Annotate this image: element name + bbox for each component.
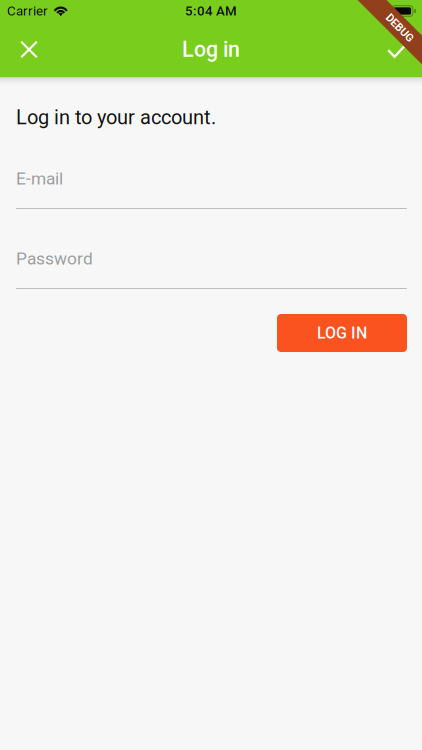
staticText: Log in to your account.	[16, 106, 216, 129]
button[interactable]: LOG IN	[277, 314, 407, 352]
button[interactable]: Submit	[374, 22, 422, 76]
staticText: E-mail	[16, 168, 63, 189]
button[interactable]: Close	[0, 22, 58, 76]
staticText: 5:04 AM	[185, 3, 237, 19]
staticText: LOG IN	[317, 324, 367, 342]
staticText: Carrier	[7, 3, 48, 19]
staticText: Log in	[182, 37, 240, 62]
staticText: DEBUG	[382, 21, 417, 35]
staticText: Password	[16, 248, 93, 269]
